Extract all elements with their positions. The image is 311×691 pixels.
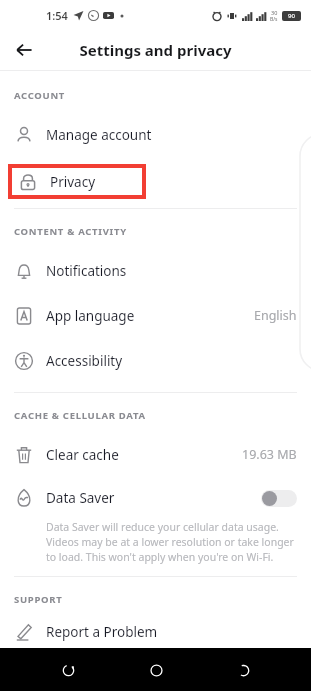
staticText: Data Saver (46, 489, 115, 507)
staticText: Data Saver will reduce your cellular dat… (46, 520, 294, 564)
staticText: English (254, 307, 297, 324)
staticText: 30 (271, 9, 278, 16)
button[interactable]: Recents (48, 650, 88, 690)
button[interactable]: Clear cache (0, 432, 311, 477)
button[interactable]: Notifications (0, 248, 311, 293)
button[interactable]: Back (223, 650, 263, 690)
staticText: Clear cache (46, 446, 119, 464)
button[interactable]: Data Saver toggle (261, 490, 297, 507)
button[interactable]: Report a Problem (0, 616, 311, 648)
staticText: App language (46, 307, 135, 325)
staticText: Notifications (46, 262, 127, 280)
staticText: Privacy (50, 173, 96, 191)
button[interactable]: Home (136, 650, 176, 690)
staticText: Accessibility (46, 352, 123, 370)
button[interactable]: Accessibility (0, 338, 311, 383)
staticText: CACHE & CELLULAR DATA (14, 409, 146, 422)
staticText: ACCOUNT (14, 89, 66, 102)
staticText: 90 (288, 12, 295, 20)
staticText: 19.63 MB (242, 446, 297, 463)
button[interactable]: App language (0, 293, 311, 338)
staticText: B/s (270, 16, 278, 23)
button[interactable]: Privacy (12, 168, 142, 195)
staticText: Manage account (46, 126, 152, 144)
staticText: SUPPORT (14, 593, 63, 606)
staticText: CONTENT & ACTIVITY (14, 225, 127, 238)
staticText: 1:54 (46, 8, 68, 23)
button[interactable]: Manage account (0, 112, 311, 157)
button[interactable]: Data Saver (0, 477, 311, 564)
staticText: Settings and privacy (79, 40, 232, 60)
button[interactable]: Back (8, 34, 40, 66)
staticText: Report a Problem (46, 623, 158, 641)
